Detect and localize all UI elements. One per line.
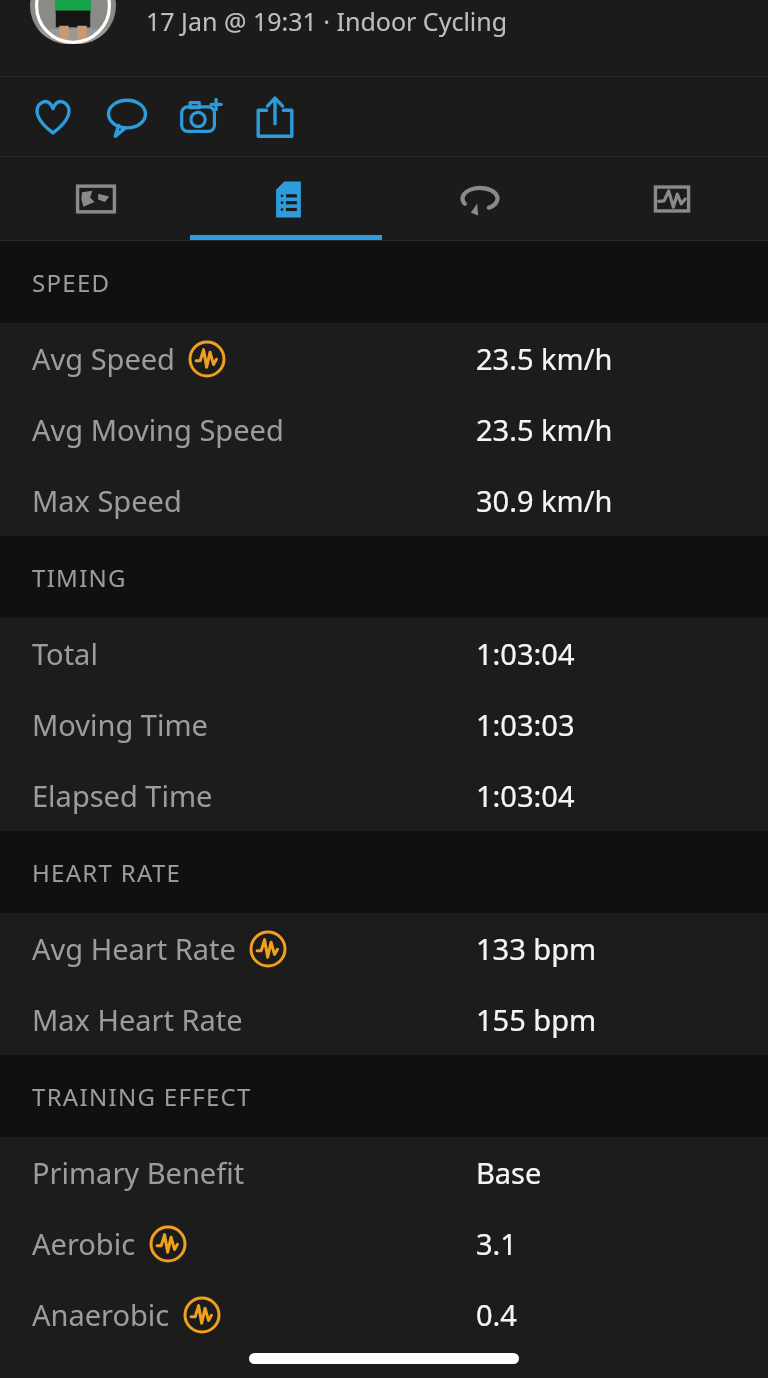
button[interactable]: Details (192, 157, 384, 240)
staticText: 17 Jan @ 19:31 · Indoor Cycling (146, 4, 508, 38)
button[interactable]: Avg Moving Speed (0, 394, 768, 465)
staticText: 155 bpm (476, 1000, 597, 1039)
button[interactable]: Add photo (164, 80, 238, 154)
staticText: Aerobic (32, 1224, 136, 1263)
staticText: Primary Benefit (32, 1153, 245, 1192)
staticText: 1:03:03 (476, 705, 575, 744)
button[interactable]: Aerobic (0, 1208, 768, 1279)
staticText: HEART RATE (32, 856, 182, 889)
staticText: Max Heart Rate (32, 1000, 243, 1039)
staticText: 1:03:04 (476, 634, 575, 673)
button[interactable]: Primary Benefit (0, 1137, 768, 1208)
staticText: Anaerobic (32, 1295, 170, 1334)
staticText: Avg Moving Speed (32, 410, 284, 449)
button[interactable]: Profile photo (30, 0, 116, 44)
button[interactable]: Map (0, 157, 192, 240)
button[interactable]: Max Speed (0, 465, 768, 536)
staticText: Total (32, 634, 98, 673)
button[interactable]: Anaerobic (0, 1279, 768, 1350)
staticText: 23.5 km/h (476, 339, 613, 378)
staticText: Elapsed Time (32, 776, 213, 815)
staticText: Base (476, 1153, 542, 1192)
staticText: Avg Heart Rate (32, 929, 236, 968)
staticText: Avg Speed (32, 339, 175, 378)
staticText: 30.9 km/h (476, 481, 613, 520)
button[interactable]: Laps (384, 157, 576, 240)
staticText: 3.1 (476, 1224, 517, 1263)
button[interactable]: Moving Time (0, 689, 768, 760)
button[interactable]: Max Heart Rate (0, 984, 768, 1055)
button[interactable]: Avg Speed (0, 323, 768, 394)
button[interactable]: Comment (90, 80, 164, 154)
button[interactable]: Like (16, 80, 90, 154)
staticText: SPEED (32, 266, 111, 299)
staticText: 0.4 (476, 1295, 517, 1334)
staticText: TRAINING EFFECT (32, 1080, 252, 1113)
button[interactable]: Avg Heart Rate (0, 913, 768, 984)
staticText: Moving Time (32, 705, 208, 744)
button[interactable]: Charts (576, 157, 768, 240)
staticText: 133 bpm (476, 929, 597, 968)
button[interactable]: Elapsed Time (0, 760, 768, 831)
staticText: Max Speed (32, 481, 182, 520)
staticText: 23.5 km/h (476, 410, 613, 449)
button[interactable]: Share (238, 80, 312, 154)
staticText: TIMING (32, 561, 127, 594)
button[interactable]: Total (0, 618, 768, 689)
staticText: 1:03:04 (476, 776, 575, 815)
